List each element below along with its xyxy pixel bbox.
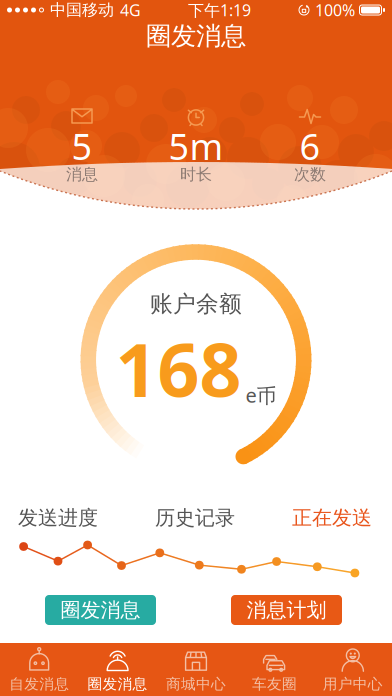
staticText: 次数 (294, 165, 326, 184)
staticText: 4G (120, 0, 141, 21)
staticText: 圈发消息 (60, 598, 140, 622)
staticText: 自发消息 (9, 675, 69, 693)
staticText: 168 (115, 320, 241, 417)
button[interactable]: 自发消息 (0, 643, 78, 696)
staticText: 时长 (180, 165, 212, 184)
staticText: 账户余额 (150, 290, 242, 318)
staticText: 中国移动 (50, 0, 114, 20)
staticText: 5m (168, 122, 223, 170)
button[interactable]: 圈发消息 (78, 643, 157, 696)
staticText: 下午1:19 (188, 0, 251, 21)
button[interactable]: 商城中心 (157, 643, 235, 696)
button[interactable]: 消息计划 (231, 595, 342, 625)
staticText: 消息 (66, 165, 98, 184)
staticText: 消息计划 (246, 598, 326, 622)
staticText: 圈发消息 (146, 20, 246, 51)
button[interactable]: 圈发消息 (45, 595, 156, 625)
staticText: 用户中心 (323, 675, 383, 693)
staticText: 正在发送 (292, 505, 372, 530)
button[interactable]: 车友圈 (235, 643, 314, 696)
staticText: 100% (315, 0, 355, 21)
staticText: 历史记录 (155, 505, 235, 530)
staticText: 6 (299, 122, 320, 170)
staticText: 发送进度 (18, 505, 98, 530)
staticText: 圈发消息 (88, 675, 148, 693)
staticText: e币 (245, 382, 276, 408)
staticText: 车友圈 (252, 675, 297, 693)
button[interactable]: 用户中心 (314, 643, 392, 696)
staticText: 5 (71, 122, 92, 170)
staticText: 商城中心 (166, 675, 226, 693)
